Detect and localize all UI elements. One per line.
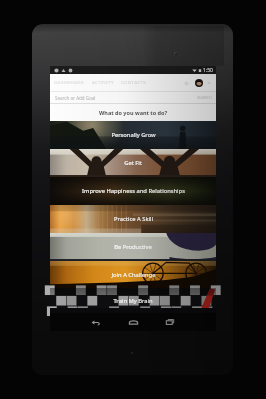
button[interactable]: Be Productive xyxy=(50,233,216,261)
button[interactable]: Personally Grow xyxy=(50,121,216,149)
staticText: ACTIVITY xyxy=(92,80,115,86)
staticText: What do you want to do? xyxy=(99,109,168,116)
button[interactable]: Settings xyxy=(181,78,191,88)
staticText: Be Productive xyxy=(114,243,152,251)
staticText: Search or Add Goal xyxy=(55,95,96,101)
button[interactable]: Improve Happiness and Relationships xyxy=(50,177,216,205)
staticText: 1:50 xyxy=(203,67,213,74)
staticText: Practice A Skill xyxy=(114,215,153,223)
button[interactable]: Home xyxy=(122,313,144,331)
staticText: CONTACTS xyxy=(121,80,147,86)
button[interactable]: More options xyxy=(205,79,213,87)
button[interactable]: Get Fit xyxy=(50,149,216,177)
button[interactable]: Profile xyxy=(194,78,204,88)
button[interactable]: Train My Brain xyxy=(50,288,216,313)
button[interactable]: Search or Add Goal xyxy=(50,92,216,103)
staticText: DASHBOARD xyxy=(54,80,85,86)
staticText: Train My Brain xyxy=(113,297,153,305)
staticText: SEARCH xyxy=(197,95,212,100)
staticText: Improve Happiness and Relationships xyxy=(82,187,185,195)
button[interactable]: Practice A Skill xyxy=(50,205,216,233)
button[interactable]: CONTACTS xyxy=(121,80,147,86)
staticText: Personally Grow xyxy=(111,131,156,139)
button[interactable]: DASHBOARD xyxy=(54,80,85,86)
button[interactable]: Back xyxy=(84,313,106,331)
button[interactable]: ACTIVITY xyxy=(92,80,115,86)
staticText: Get Fit xyxy=(124,159,142,167)
button[interactable]: Recent apps xyxy=(159,313,181,331)
button[interactable]: Join A Challenge xyxy=(50,261,216,288)
staticText: Join A Challenge xyxy=(111,271,156,279)
